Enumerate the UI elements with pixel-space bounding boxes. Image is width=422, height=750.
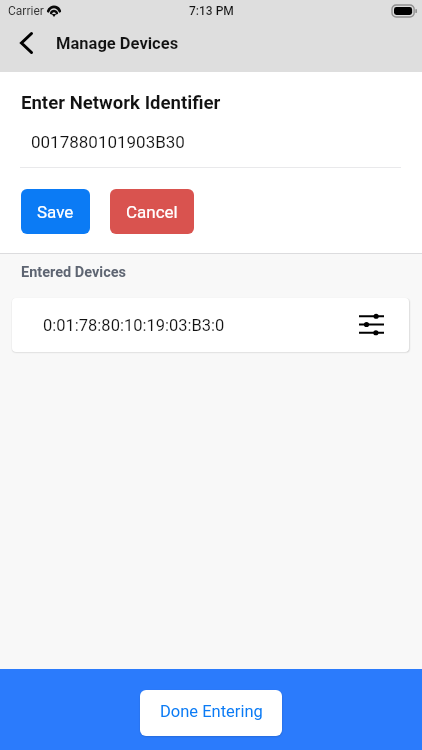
staticText: 0017880101903B30	[31, 132, 185, 152]
button[interactable]: Done Entering	[140, 690, 282, 736]
staticText: Save	[37, 202, 74, 222]
staticText: Manage Devices	[56, 34, 179, 53]
button[interactable]: Save	[21, 189, 90, 234]
button[interactable]: 0:01:78:80:10:19:03:B3:0	[12, 298, 409, 352]
staticText: Done Entering	[160, 702, 263, 721]
staticText: 7:13 PM	[189, 4, 234, 18]
staticText: 0:01:78:80:10:19:03:B3:0	[43, 316, 225, 335]
staticText: Cancel	[126, 202, 178, 222]
button[interactable]: Device settings	[352, 304, 390, 344]
staticText: Carrier	[8, 4, 44, 18]
staticText: Entered Devices	[21, 264, 127, 281]
button[interactable]: Cancel	[110, 189, 194, 234]
button[interactable]: Back	[13, 28, 39, 58]
staticText: Enter Network Identifier	[21, 92, 221, 114]
